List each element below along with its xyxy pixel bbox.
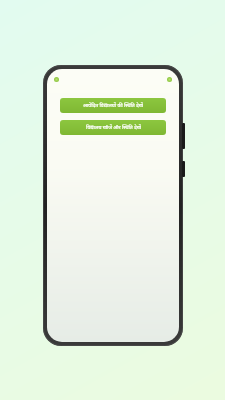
- staticText: विद्यालय खोजें और स्थिति देखें: [86, 124, 141, 131]
- other: Volume: [182, 123, 185, 149]
- other: Indicator: [54, 77, 59, 82]
- other: Power: [182, 161, 185, 177]
- button[interactable]: विद्यालय खोजें और स्थिति देखें: [60, 120, 166, 135]
- other: Indicator: [167, 77, 172, 82]
- staticText: आवेदित विद्यालयों की स्थिति देखें: [83, 102, 143, 109]
- button[interactable]: आवेदित विद्यालयों की स्थिति देखें: [60, 98, 166, 113]
